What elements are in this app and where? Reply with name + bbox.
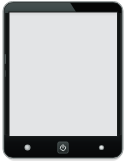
button[interactable]: Tablet device xyxy=(0,0,126,161)
